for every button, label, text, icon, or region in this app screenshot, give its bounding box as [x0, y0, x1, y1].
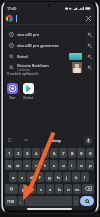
button[interactable]: a — [9, 172, 17, 182]
button[interactable] — [25, 196, 72, 206]
button[interactable]: Insert query — [87, 32, 93, 38]
staticText: 5 — [44, 150, 47, 156]
button[interactable]: r — [32, 160, 40, 170]
staticText: y — [22, 186, 25, 192]
staticText: e — [26, 162, 29, 168]
button[interactable]: e — [23, 160, 31, 170]
staticText: w — [16, 162, 20, 168]
button[interactable]: g — [45, 172, 53, 182]
button[interactable]: n — [64, 184, 72, 194]
button[interactable]: Backspace — [82, 184, 94, 194]
staticText: . — [75, 198, 77, 204]
staticText: Victoria Beckham — [17, 63, 49, 68]
staticText: f — [39, 174, 41, 180]
button[interactable]: p — [86, 160, 94, 170]
button[interactable]: q — [5, 160, 13, 170]
staticText: b — [58, 186, 61, 192]
button[interactable]: vivo x80 pro — [4, 29, 95, 40]
button[interactable]: y — [19, 184, 27, 194]
button[interactable]: w — [14, 160, 22, 170]
staticText: 6 — [53, 150, 56, 156]
staticText: vivo x80 pro — [17, 32, 40, 37]
staticText: j — [66, 174, 68, 180]
button[interactable]: Shift — [5, 184, 18, 194]
button[interactable]: b — [55, 184, 63, 194]
button[interactable]: 8 — [68, 148, 76, 158]
button[interactable]: o — [77, 160, 85, 170]
staticText: 2 — [17, 150, 20, 156]
staticText: v — [49, 186, 52, 192]
staticText: vivo x80 pro gsmarena — [17, 43, 59, 48]
button[interactable]: s — [18, 172, 26, 182]
button[interactable]: Emoji — [6, 136, 14, 144]
staticText: g — [48, 174, 51, 180]
staticText: p — [89, 162, 92, 168]
staticText: 7 — [62, 150, 65, 156]
button[interactable]: 4 — [32, 148, 40, 158]
button[interactable]: k — [72, 172, 80, 182]
button[interactable]: m — [73, 184, 81, 194]
staticText: 1 — [8, 150, 11, 156]
button[interactable]: Expand — [22, 136, 30, 144]
button[interactable]: v — [46, 184, 54, 194]
staticText: 4 — [35, 150, 38, 156]
button[interactable]: l — [81, 172, 89, 182]
staticText: u — [62, 162, 65, 168]
button[interactable]: 7 — [59, 148, 67, 158]
button[interactable]: h — [54, 172, 62, 182]
button[interactable]: Insert query — [87, 65, 93, 71]
staticText: 3 — [26, 150, 29, 156]
staticText: k — [75, 174, 78, 180]
staticText: t — [44, 162, 46, 168]
button[interactable]: vivo x80 pro gsmarena — [4, 40, 95, 51]
staticText: n — [67, 186, 70, 192]
staticText: ?123 — [7, 199, 15, 204]
staticText: l — [84, 174, 86, 180]
button[interactable]: d — [27, 172, 35, 182]
button[interactable]: Victoria Beckham — [4, 62, 95, 73]
button[interactable]: Insert query — [87, 54, 93, 60]
button[interactable]: x — [28, 184, 36, 194]
staticText: a — [12, 174, 15, 180]
button[interactable]: . — [73, 196, 79, 206]
staticText: Celebrita — [17, 68, 30, 72]
staticText: i — [71, 162, 73, 168]
button[interactable]: Obchod Play — [23, 83, 34, 100]
button[interactable]: Voice input — [84, 136, 93, 145]
button[interactable]: Search — [80, 196, 94, 206]
button[interactable]: i — [68, 160, 76, 170]
button[interactable]: Clear — [84, 14, 93, 23]
button[interactable]: 9 — [77, 148, 85, 158]
staticText: 8 — [71, 150, 74, 156]
button[interactable]: z — [50, 160, 58, 170]
staticText: Viber — [9, 96, 16, 100]
staticText: Obchod Play — [23, 96, 34, 100]
button[interactable]: u — [59, 160, 67, 170]
staticText: , — [20, 198, 22, 204]
button[interactable]: t — [41, 160, 49, 170]
staticText: h — [57, 174, 60, 180]
staticText: 17:40 — [7, 6, 17, 11]
button[interactable]: Voted — [4, 51, 95, 62]
button[interactable]: Insert query — [87, 43, 93, 49]
button[interactable]: c — [37, 184, 45, 194]
button[interactable]: ?123 — [5, 196, 17, 206]
button[interactable]: Clear — [4, 12, 95, 24]
button[interactable]: 0 — [86, 148, 94, 158]
button[interactable]: f — [36, 172, 44, 182]
button[interactable]: j — [63, 172, 71, 182]
button[interactable]: Viber — [7, 83, 18, 100]
button[interactable]: 2 — [14, 148, 22, 158]
staticText: m — [75, 186, 80, 192]
staticText: x — [31, 186, 34, 192]
button[interactable]: 3 — [23, 148, 31, 158]
staticText: 9 — [80, 150, 83, 156]
button[interactable]: 1 — [5, 148, 13, 158]
button[interactable]: 6 — [50, 148, 58, 158]
button[interactable]: , — [18, 196, 24, 206]
staticText: 0 — [89, 150, 92, 156]
staticText: q — [8, 162, 11, 168]
staticText: r — [35, 162, 37, 168]
button[interactable]: 5 — [41, 148, 49, 158]
staticText: o — [80, 162, 83, 168]
